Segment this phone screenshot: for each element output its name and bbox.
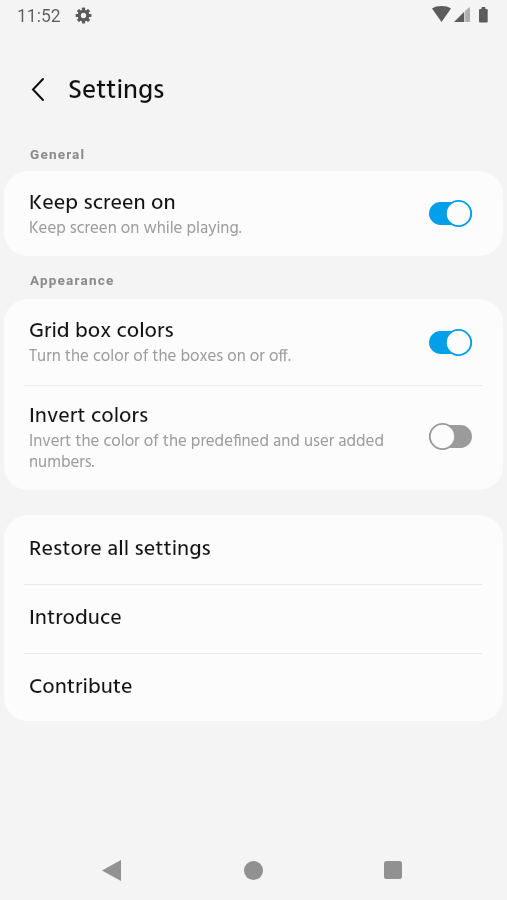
staticText: Contribute <box>29 670 133 705</box>
staticText: Keep screen on <box>29 186 176 221</box>
button[interactable]: Restore all settings <box>4 515 503 584</box>
staticText: Grid box colors <box>29 314 174 349</box>
staticText: Turn the color of the boxes on or off. <box>29 343 291 370</box>
button[interactable]: Home <box>229 846 277 894</box>
staticText: Restore all settings <box>29 532 211 567</box>
button[interactable]: Recent apps <box>369 846 417 894</box>
staticText: Appearance <box>30 272 115 288</box>
button[interactable]: Invert colors, off <box>421 413 479 460</box>
staticText: Settings <box>68 70 165 113</box>
button[interactable]: Contribute <box>4 653 503 721</box>
button[interactable]: Introduce <box>4 584 503 653</box>
staticText: Keep screen on while playing. <box>29 215 242 242</box>
button[interactable]: Keep screen on, on <box>421 190 479 237</box>
staticText: General <box>30 146 86 162</box>
button[interactable]: Back <box>87 846 135 894</box>
staticText: 11:52 <box>17 6 61 27</box>
staticText: Invert the color of the predefined and u… <box>29 428 399 476</box>
button[interactable]: Back <box>14 65 62 113</box>
staticText: Invert colors <box>29 399 149 434</box>
staticText: Introduce <box>29 601 122 636</box>
button[interactable]: Grid box colors, on <box>421 319 479 366</box>
